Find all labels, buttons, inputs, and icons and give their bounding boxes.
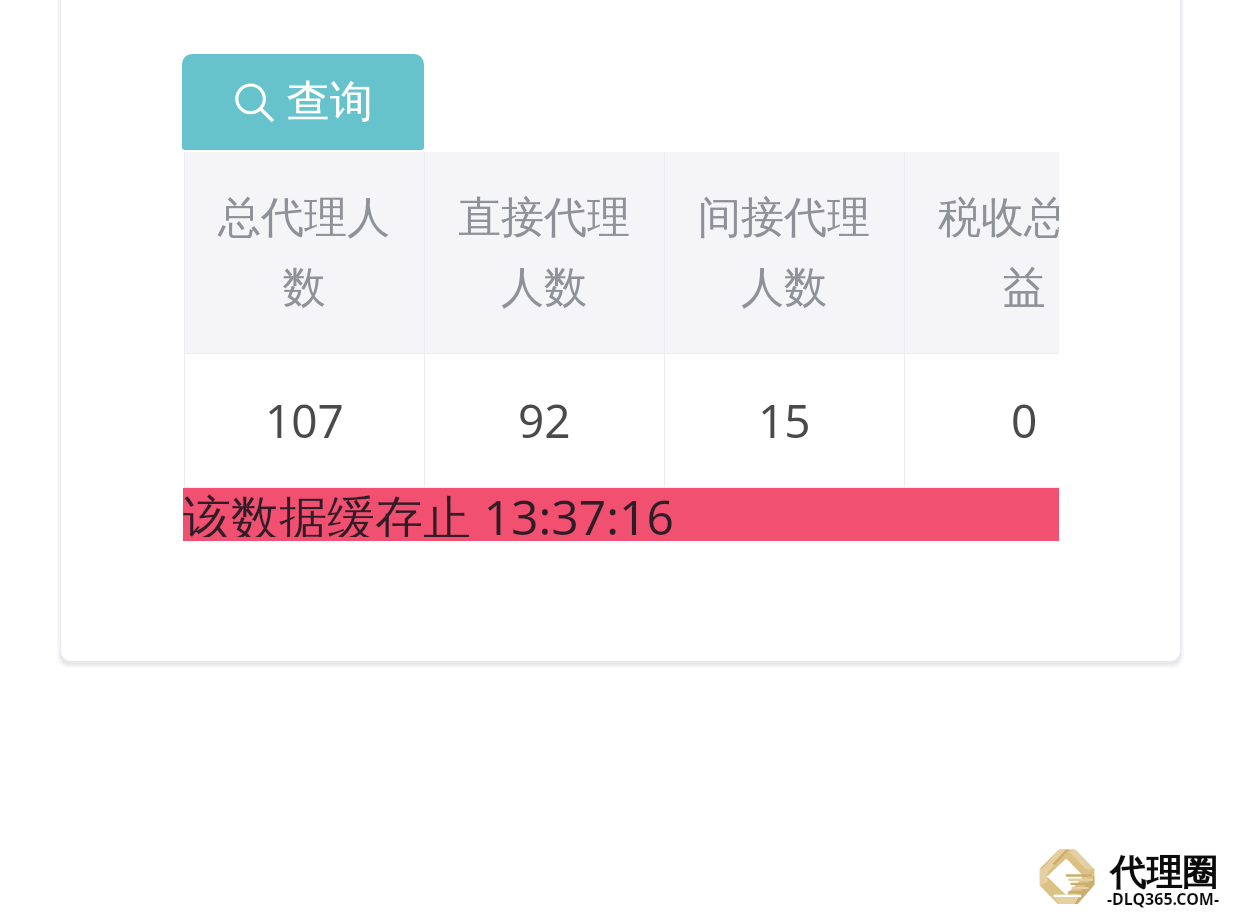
staticText: 该数据缓存止 13:37:16 — [183, 484, 674, 537]
staticText: 0 — [1011, 389, 1038, 452]
staticText: -DLQ365.COM- — [1107, 888, 1220, 910]
staticText: 间接代理人数 — [682, 191, 886, 314]
staticText: 总代理人数 — [202, 191, 406, 314]
staticText: 代理圈 — [1110, 850, 1218, 895]
staticText: 92 — [518, 389, 571, 452]
button[interactable]: 间接代理人数 — [664, 152, 904, 353]
button[interactable]: 107 — [184, 354, 424, 487]
staticText: 15 — [758, 389, 811, 452]
button[interactable]: 该数据缓存止 13:37:16 — [183, 488, 1059, 541]
staticText: 107 — [265, 389, 344, 452]
button[interactable]: 92 — [424, 354, 664, 487]
staticText: 税收总收益 — [922, 191, 1059, 314]
button[interactable]: 0 — [904, 354, 1059, 487]
button[interactable]: 15 — [664, 354, 904, 487]
staticText: 查询 — [287, 75, 373, 129]
button[interactable]: 税收总收益 — [904, 152, 1059, 353]
staticText: 直接代理人数 — [442, 191, 646, 314]
button[interactable]: 查询 Search — [182, 54, 424, 150]
other: Search — [233, 82, 273, 122]
button[interactable]: 直接代理人数 — [424, 152, 664, 353]
button[interactable]: 总代理人数 — [184, 152, 424, 353]
